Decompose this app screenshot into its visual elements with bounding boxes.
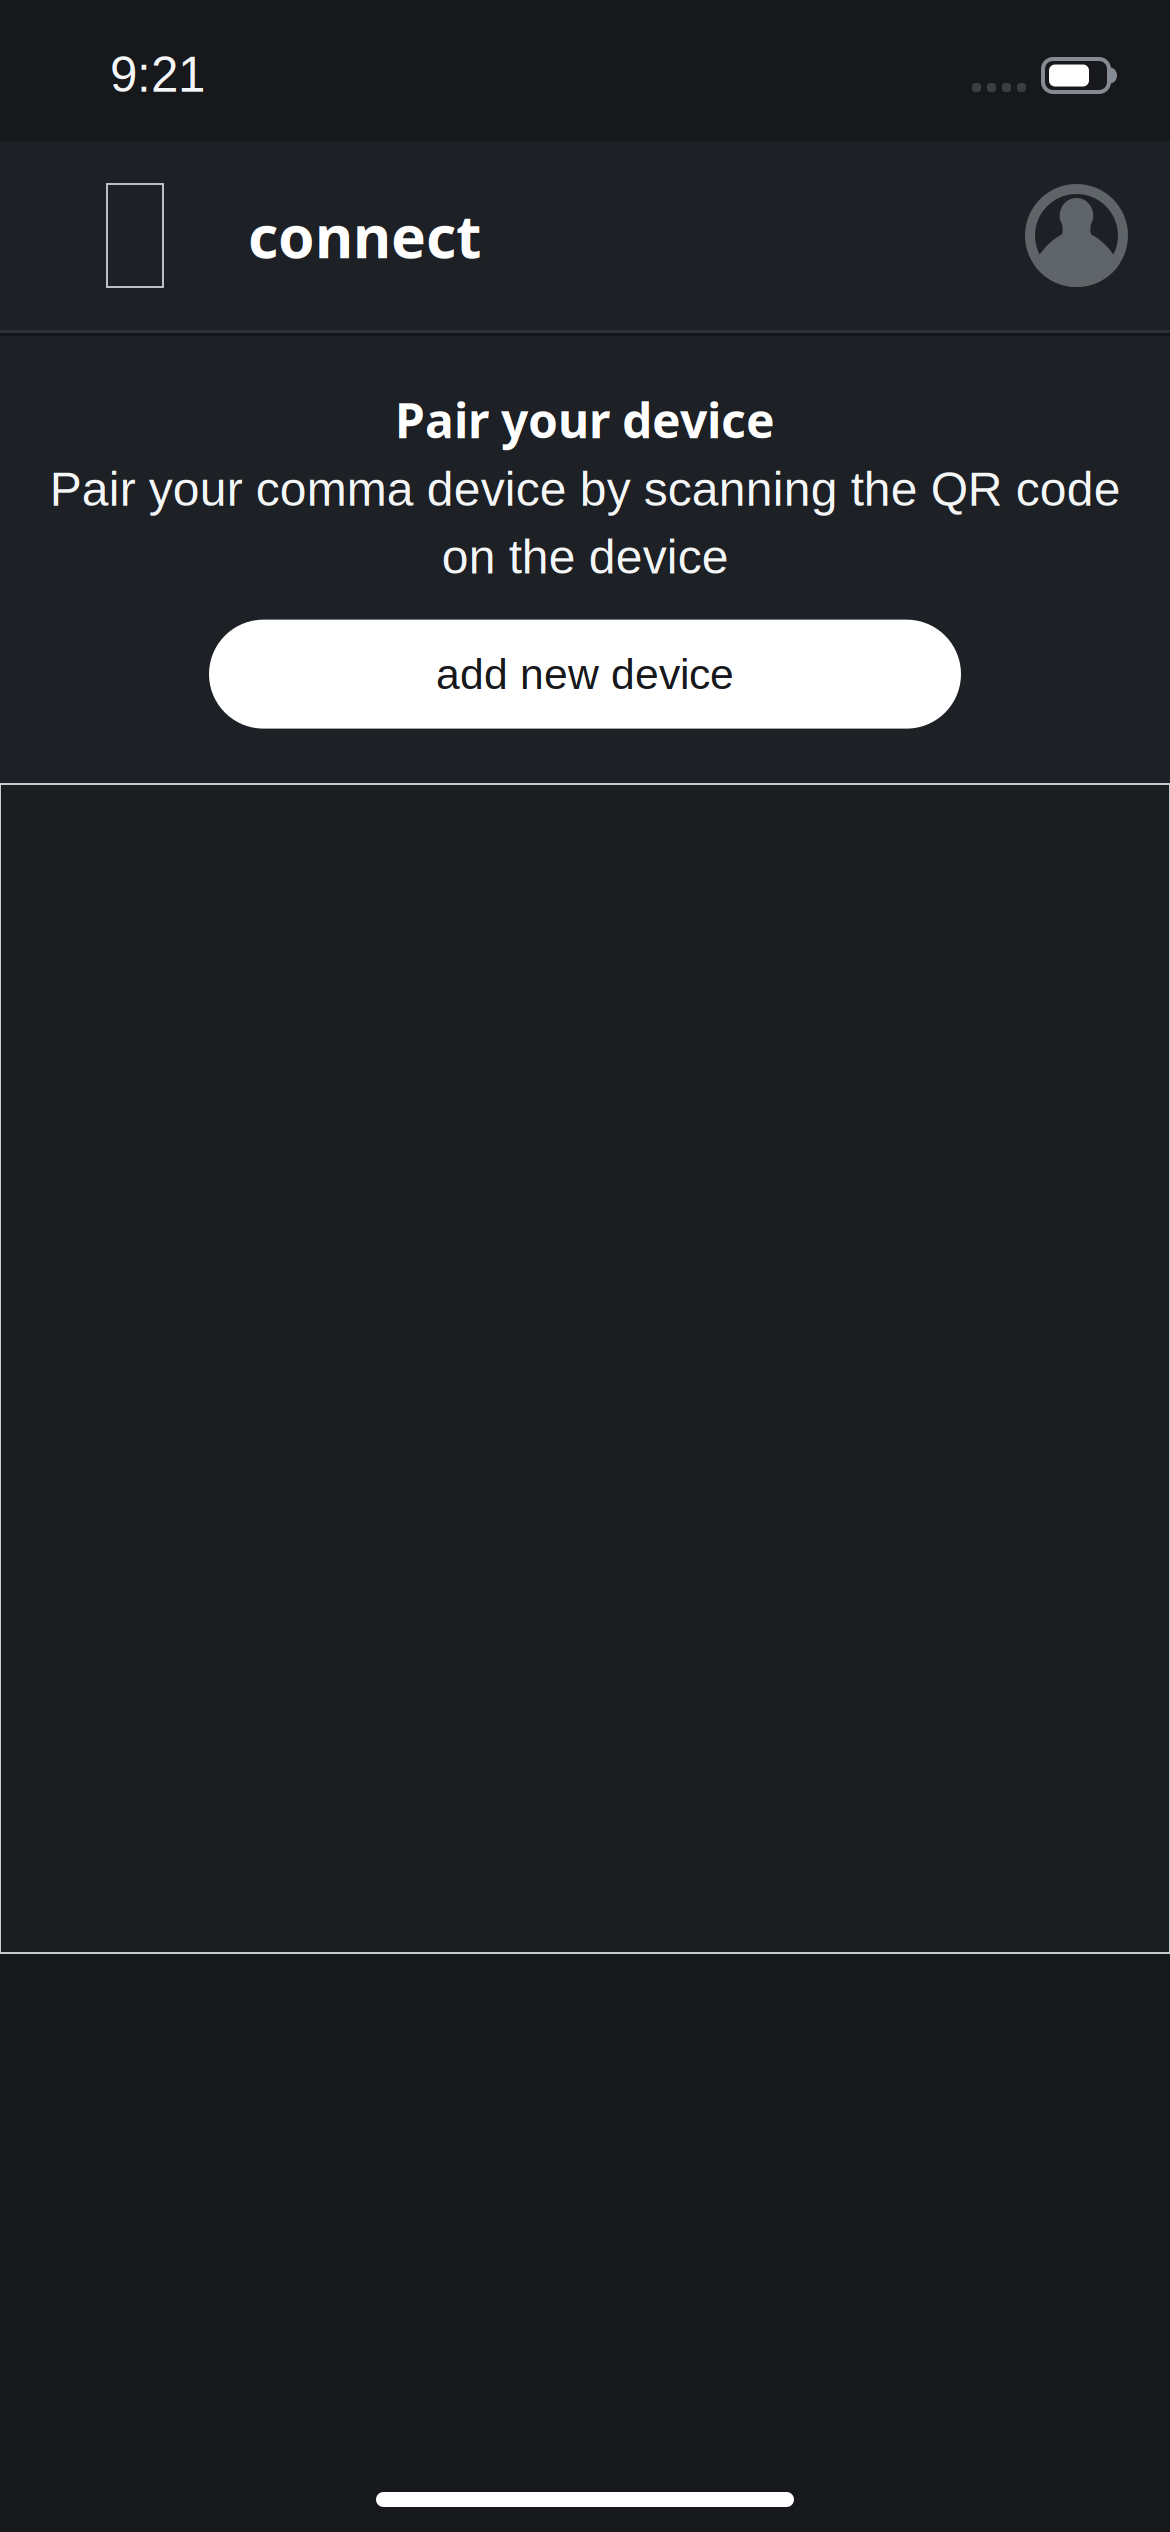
staticText: 9:21 bbox=[110, 47, 205, 102]
button[interactable]: Account bbox=[1001, 162, 1128, 309]
button[interactable]: connect bbox=[163, 171, 495, 299]
staticText: Pair your device bbox=[395, 387, 775, 452]
staticText: connect bbox=[248, 195, 481, 275]
button[interactable]: add new device bbox=[209, 620, 961, 729]
staticText: add new device bbox=[436, 650, 734, 698]
button[interactable]: comma bbox=[107, 162, 163, 309]
staticText: Pair your comma device by scanning the Q… bbox=[49, 462, 1120, 584]
